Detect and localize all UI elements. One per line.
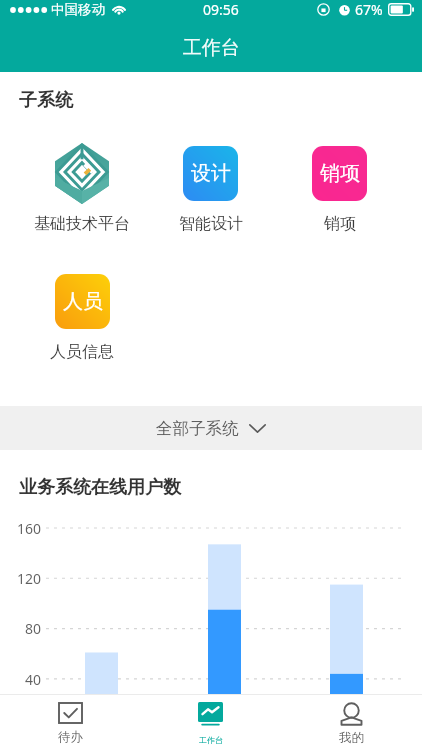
staticText: 120 xyxy=(0,569,41,588)
staticText: 09:56 xyxy=(203,0,239,19)
staticText: 中国移动 xyxy=(51,1,105,18)
staticText: 160 xyxy=(0,519,41,538)
button[interactable]: 人员 xyxy=(18,271,146,362)
staticText: 智能设计 xyxy=(179,214,243,234)
button[interactable]: 待办 xyxy=(0,695,140,750)
staticText: 全部子系统 xyxy=(156,418,239,439)
staticText: 40 xyxy=(0,670,41,689)
staticText: 我的 xyxy=(339,730,364,746)
staticText: 子系统 xyxy=(19,89,73,112)
staticText: 基础技术平台 xyxy=(34,214,130,234)
staticText: 销项 xyxy=(324,214,356,234)
staticText: 待办 xyxy=(58,729,83,745)
staticText: 80 xyxy=(0,619,41,638)
button[interactable]: 工作台 xyxy=(140,695,281,750)
staticText: 设计 xyxy=(191,161,231,186)
button[interactable]: 基础技术平台 xyxy=(18,143,146,234)
staticText: 工作台 xyxy=(199,735,223,745)
button[interactable]: 全部子系统 xyxy=(0,406,422,450)
button[interactable]: 设计 xyxy=(146,143,275,234)
staticText: 工作台 xyxy=(183,36,240,60)
staticText: 67% xyxy=(355,0,383,19)
staticText: 人员信息 xyxy=(50,342,114,362)
staticText: 销项 xyxy=(320,161,360,186)
staticText: 业务系统在线用户数 xyxy=(19,476,181,499)
button[interactable]: 我的 xyxy=(281,695,422,750)
staticText: 人员 xyxy=(63,289,103,314)
button[interactable]: 销项 xyxy=(275,143,404,234)
